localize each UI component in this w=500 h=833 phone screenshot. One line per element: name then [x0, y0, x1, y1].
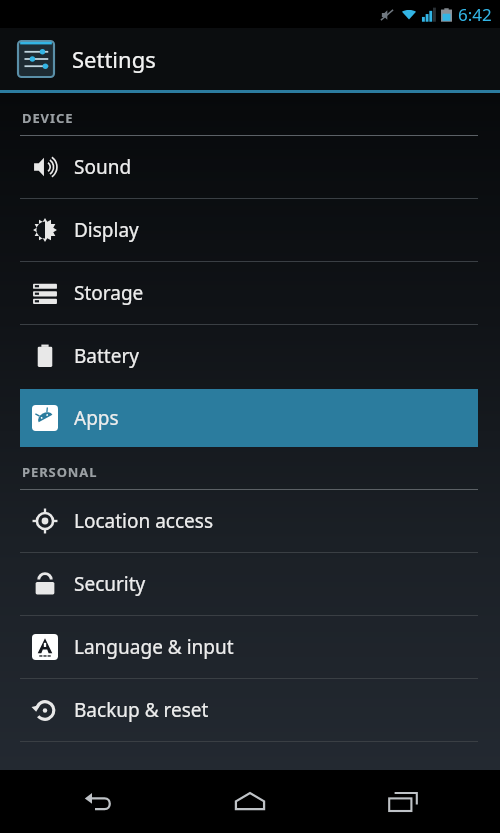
button[interactable]: Recent apps [348, 770, 458, 833]
button[interactable]: Battery [0, 325, 500, 387]
staticText: Language & input [74, 634, 234, 660]
button[interactable]: Backup & reset [0, 679, 500, 741]
staticText: Storage [74, 280, 144, 306]
staticText: Settings [72, 44, 156, 74]
button[interactable]: Back [43, 770, 153, 833]
staticText: Battery [74, 343, 139, 369]
staticText: Security [74, 571, 146, 597]
staticText: Location access [74, 508, 213, 534]
staticText: Backup & reset [74, 697, 209, 723]
button[interactable]: Settings [0, 28, 500, 90]
button[interactable]: Sound [0, 136, 500, 198]
staticText: 6:42 [458, 3, 492, 26]
button[interactable]: Apps [20, 389, 478, 447]
staticText: Apps [74, 405, 119, 431]
button[interactable]: Home [195, 770, 305, 833]
button[interactable]: Language & input [0, 616, 500, 678]
staticText: Sound [74, 154, 132, 180]
button[interactable]: Security [0, 553, 500, 615]
button[interactable]: Storage [0, 262, 500, 324]
staticText: Display [74, 217, 139, 243]
staticText: DEVICE [22, 109, 74, 127]
staticText: PERSONAL [22, 463, 98, 481]
button[interactable]: Display [0, 199, 500, 261]
button[interactable]: Location access [0, 490, 500, 552]
